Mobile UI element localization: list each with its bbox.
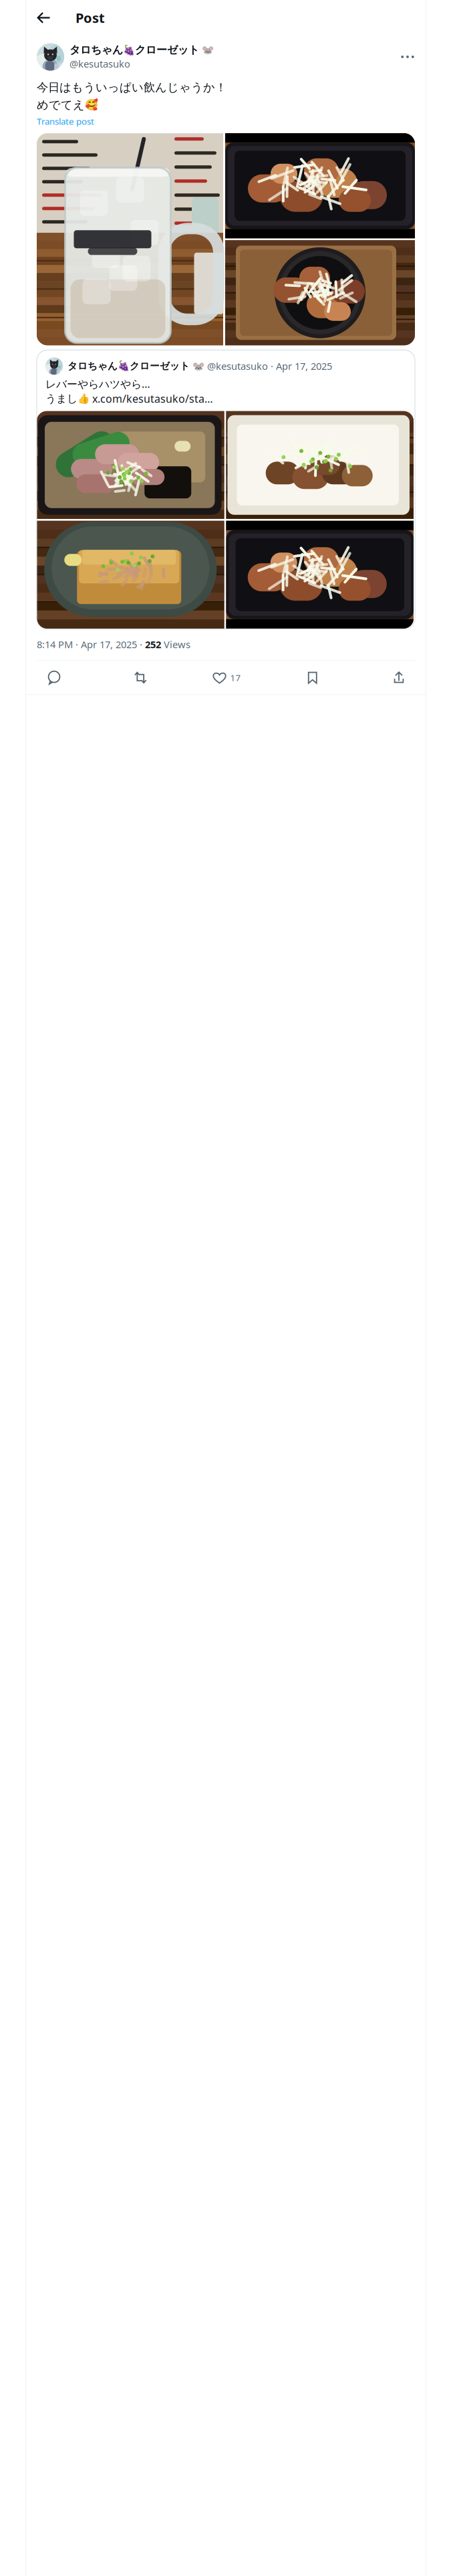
staticText: うまし [45, 392, 78, 405]
staticText: クローゼット [135, 43, 199, 57]
staticText: 🐭 [199, 43, 214, 57]
button[interactable]: Repost [126, 664, 155, 692]
button[interactable]: Back [26, 0, 61, 35]
staticText: タロちゃん [67, 360, 118, 372]
staticText: 🍇 [123, 44, 135, 56]
button[interactable]: Reply [39, 664, 69, 692]
staticText: Views [161, 638, 190, 651]
staticText: Translate post [37, 115, 94, 127]
staticText: 252 [145, 638, 161, 651]
staticText: 👍 [78, 393, 90, 404]
staticText: @kesutasuko [69, 57, 130, 70]
button[interactable]: More [396, 47, 419, 66]
staticText: 🥰 [85, 99, 98, 111]
staticText: レバーやらハツやら… [45, 377, 150, 391]
staticText: 8:14 PM · Apr 17, 2025 · [37, 638, 145, 651]
staticText: Post [76, 9, 105, 27]
staticText: タロちゃん [69, 43, 123, 57]
staticText: めでてえ [37, 98, 85, 112]
staticText: x.com/kesutasuko/sta… [90, 392, 213, 406]
button[interactable]: Like [212, 664, 241, 692]
staticText: クローゼット [130, 360, 190, 372]
button[interactable]: Bookmark [298, 664, 327, 692]
staticText: 17 [230, 672, 241, 684]
staticText: 🍇 [118, 360, 130, 372]
staticText: @kesutasuko · Apr 17, 2025 [204, 359, 332, 372]
staticText: 今日はもういっぱい飲んじゃうか！ [37, 80, 227, 94]
button[interactable]: Translate post [26, 112, 94, 129]
button[interactable]: Share [384, 664, 414, 692]
staticText: 🐭 [190, 359, 204, 372]
